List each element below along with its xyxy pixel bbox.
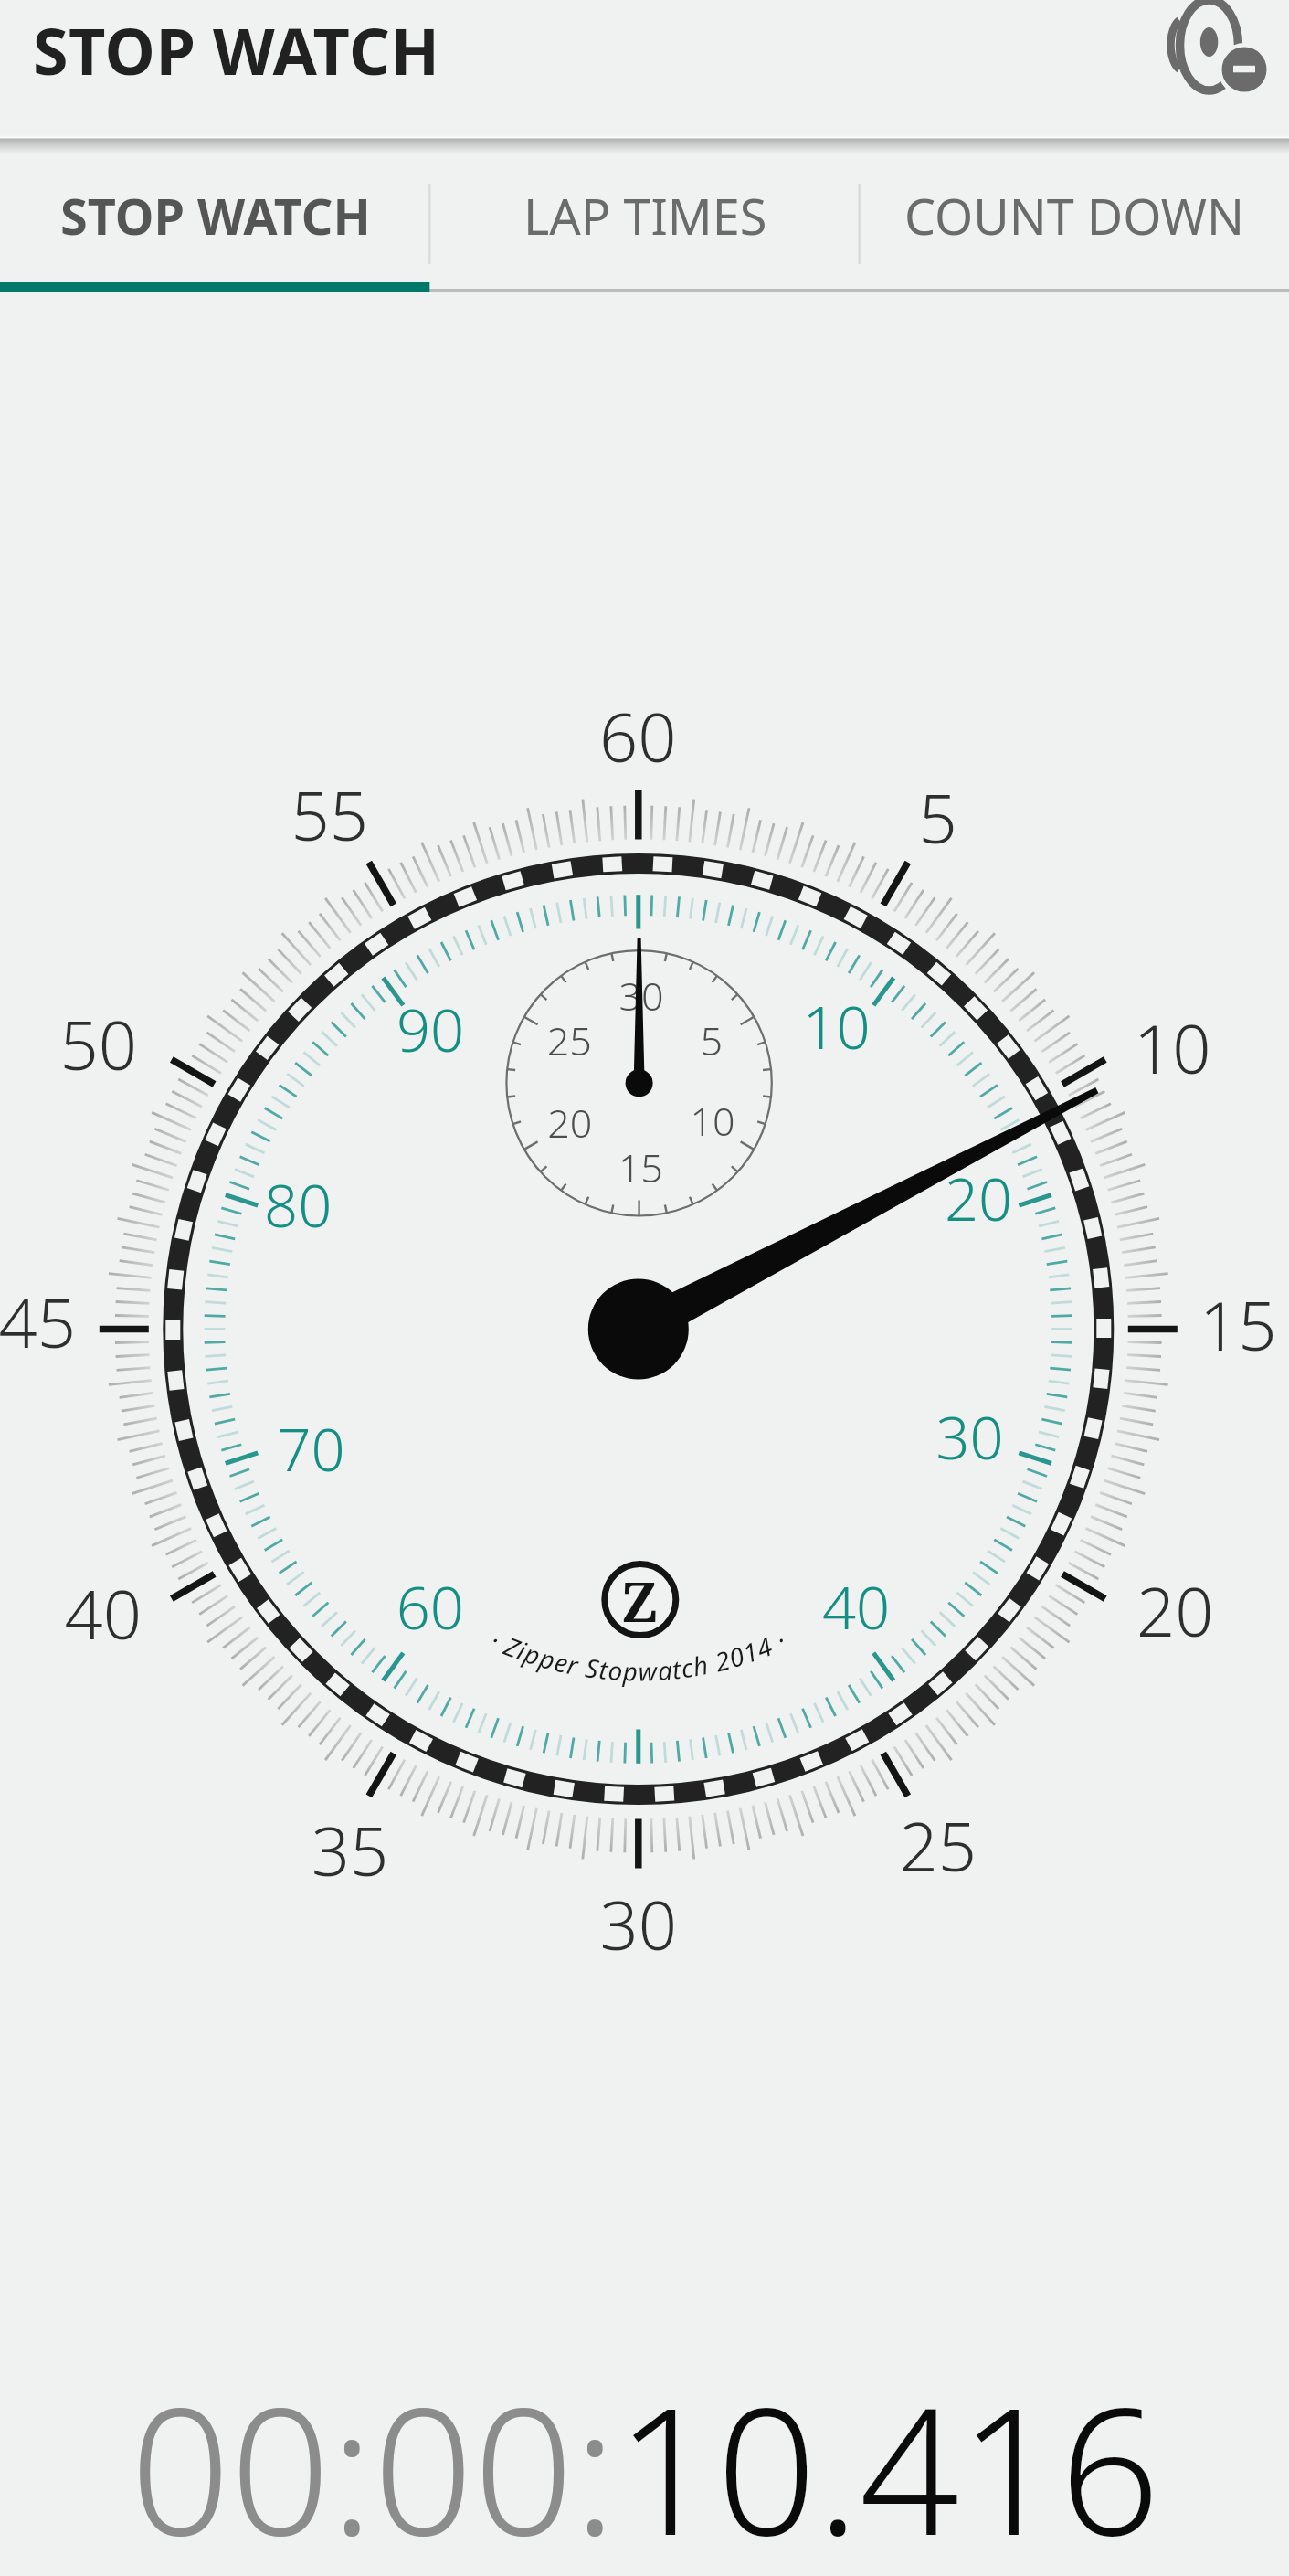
button[interactable]: STOP WATCH <box>0 154 430 292</box>
button[interactable]: Start or stop the stopwatch <box>0 292 1289 2274</box>
staticText: COUNT DOWN <box>904 182 1245 249</box>
staticText: 00:00:10.416 <box>130 2348 1160 2576</box>
button[interactable]: COUNT DOWN <box>860 154 1289 292</box>
staticText: STOP WATCH <box>60 182 371 249</box>
staticText: LAP TIMES <box>523 182 767 249</box>
staticText: STOP WATCH <box>33 6 440 93</box>
button[interactable]: LAP TIMES <box>430 154 860 292</box>
button[interactable]: Mute sound <box>1167 0 1269 100</box>
